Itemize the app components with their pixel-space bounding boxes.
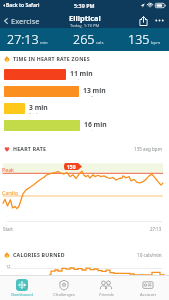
button[interactable]: More options <box>153 14 166 27</box>
button[interactable]: Account <box>127 276 169 300</box>
staticText: cardio <box>83 95 96 97</box>
staticText: Today, 1:19 PM <box>70 23 100 28</box>
staticText: TIME IN HEART RATE ZONES <box>13 55 90 62</box>
staticText: cals <box>96 40 104 46</box>
staticText: Exercise <box>11 16 40 26</box>
staticText: Start <box>3 226 13 232</box>
staticText: min <box>40 40 48 46</box>
staticText: 3 min <box>29 103 48 112</box>
staticText: Elliptical <box>69 13 101 23</box>
button[interactable]: Challenges <box>43 276 85 300</box>
staticText: Account <box>140 292 156 298</box>
button[interactable]: Exercise <box>0 16 43 26</box>
staticText: 27:13 <box>7 31 39 48</box>
staticText: custom <box>84 129 100 131</box>
staticText: 150 <box>67 164 76 171</box>
staticText: 16 min <box>84 120 107 129</box>
staticText: 265 <box>73 31 95 48</box>
staticText: HEART RATE <box>13 145 47 152</box>
staticText: 10 cals/min <box>137 252 162 258</box>
staticText: Dashboard <box>11 292 33 298</box>
staticText: peak <box>70 78 80 80</box>
staticText: 27:13 <box>150 226 162 232</box>
staticText: fat burn <box>29 112 46 114</box>
staticText: 135 <box>128 31 150 48</box>
staticText: Friends <box>99 292 114 298</box>
staticText: 11 min <box>70 69 93 78</box>
staticText: bpm <box>151 40 161 46</box>
staticText: CALORIES BURNED <box>13 251 65 258</box>
staticText: 12 <box>6 264 11 269</box>
staticText: Peak <box>2 166 15 173</box>
button[interactable]: Friends <box>85 276 127 300</box>
staticText: 5:39 PM <box>74 2 95 9</box>
staticText: Challenges <box>53 292 75 298</box>
button[interactable]: Share <box>137 14 150 27</box>
staticText: Cardio <box>2 189 19 196</box>
button[interactable]: Dashboard <box>0 276 43 300</box>
staticText: 135 avg bpm <box>134 146 162 152</box>
staticText: 13 min <box>83 86 106 95</box>
staticText: Back to Safari <box>6 2 40 9</box>
